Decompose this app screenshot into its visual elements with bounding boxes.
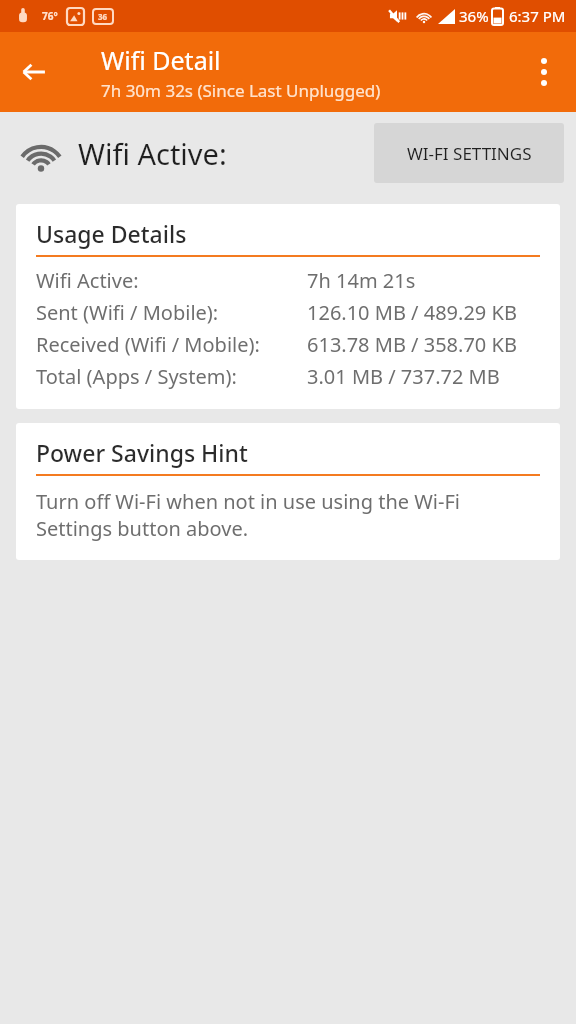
staticText: 613.78 MB / 358.70 KB [307,331,517,358]
staticText: Sent (Wifi / Mobile): [36,299,219,326]
staticText: 7h 30m 32s (Since Last Unplugged) [101,79,381,102]
staticText: Turn off Wi-Fi when not in use using the… [36,488,540,542]
button[interactable]: Back [8,46,60,98]
button[interactable]: More options [518,46,570,98]
staticText: WI-FI SETTINGS [407,142,532,165]
staticText: 36 [98,11,108,22]
button[interactable]: WI-FI SETTINGS [374,123,564,183]
button[interactable]: Usage Details [16,204,560,409]
staticText: Usage Details [36,218,187,249]
staticText: Received (Wifi / Mobile): [36,331,260,358]
staticText: 6:37 PM [509,6,566,26]
staticText: Total (Apps / System): [36,363,237,390]
staticText: 3.01 MB / 737.72 MB [307,363,500,390]
staticText: Wifi Active: [78,134,227,173]
staticText: Wifi Active: [36,267,139,294]
staticText: 36% [459,6,489,26]
staticText: Wifi Detail [101,43,221,77]
staticText: 76° [42,9,58,23]
staticText: 126.10 MB / 489.29 KB [307,299,517,326]
button[interactable]: Power Savings Hint [16,423,560,560]
staticText: Power Savings Hint [36,437,248,468]
staticText: 7h 14m 21s [307,267,416,294]
